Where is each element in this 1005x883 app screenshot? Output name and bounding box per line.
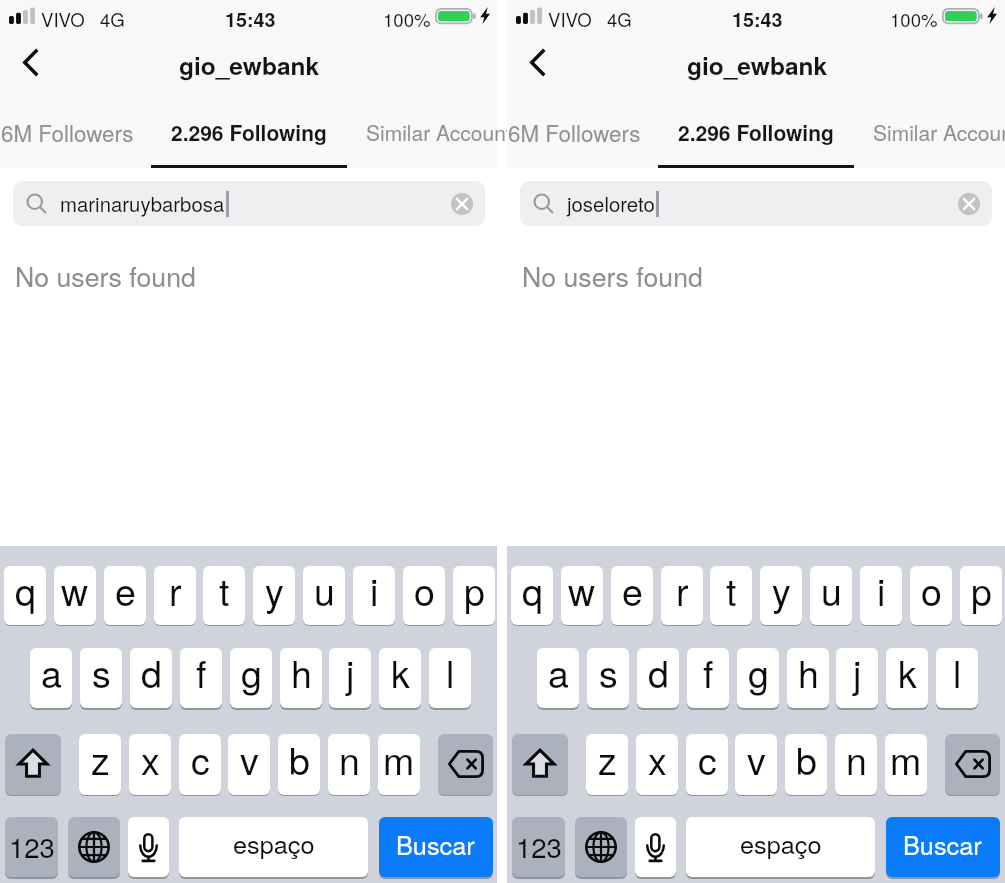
button[interactable]: 123: [512, 817, 565, 877]
staticText: z: [91, 734, 110, 786]
button[interactable]: i: [860, 566, 902, 625]
button[interactable]: Similar Accounts: [873, 116, 1005, 148]
button[interactable]: s: [80, 648, 122, 708]
staticText: joseloreto: [567, 189, 655, 218]
button[interactable]: n: [835, 734, 877, 795]
button[interactable]: z: [79, 734, 121, 795]
button[interactable]: z: [586, 734, 628, 795]
staticText: k: [898, 648, 917, 699]
staticText: v: [240, 734, 259, 786]
staticText: VIVO: [41, 6, 85, 33]
button[interactable]: j: [836, 648, 878, 708]
button[interactable]: m: [378, 734, 420, 795]
button[interactable]: a: [537, 648, 579, 708]
button[interactable]: b: [278, 734, 320, 795]
button[interactable]: t: [203, 566, 245, 625]
button[interactable]: f: [180, 648, 222, 708]
button[interactable]: o: [403, 566, 445, 625]
button[interactable]: joseloreto: [520, 181, 992, 226]
staticText: v: [747, 734, 766, 786]
button[interactable]: Dictate: [635, 817, 676, 877]
button[interactable]: 6M Followers: [508, 116, 641, 148]
button[interactable]: m: [885, 734, 927, 795]
button[interactable]: p: [453, 566, 495, 625]
button[interactable]: Backspace: [438, 734, 493, 795]
button[interactable]: c: [179, 734, 221, 795]
button[interactable]: c: [686, 734, 728, 795]
button[interactable]: l: [936, 648, 978, 708]
staticText: 4G: [607, 6, 632, 33]
button[interactable]: r: [661, 566, 703, 625]
button[interactable]: Similar Accounts: [366, 116, 523, 148]
button[interactable]: x: [129, 734, 171, 795]
button[interactable]: f: [687, 648, 729, 708]
button[interactable]: 123: [5, 817, 58, 877]
button[interactable]: Backspace: [945, 734, 1000, 795]
button[interactable]: k: [379, 648, 421, 708]
button[interactable]: j: [329, 648, 371, 708]
staticText: Buscar: [396, 826, 475, 862]
staticText: i: [370, 566, 379, 617]
button[interactable]: Buscar: [379, 817, 493, 877]
button[interactable]: y: [253, 566, 295, 625]
button[interactable]: y: [760, 566, 802, 625]
button[interactable]: 2.296 Following: [171, 116, 327, 148]
button[interactable]: Buscar: [886, 817, 1000, 877]
button[interactable]: h: [280, 648, 322, 708]
button[interactable]: espaço: [179, 817, 368, 877]
button[interactable]: u: [303, 566, 345, 625]
button[interactable]: s: [587, 648, 629, 708]
staticText: y: [265, 566, 284, 617]
button[interactable]: g: [230, 648, 272, 708]
button[interactable]: espaço: [686, 817, 875, 877]
button[interactable]: k: [886, 648, 928, 708]
button[interactable]: d: [130, 648, 172, 708]
button[interactable]: e: [611, 566, 653, 625]
button[interactable]: e: [104, 566, 146, 625]
button[interactable]: n: [328, 734, 370, 795]
button[interactable]: q: [4, 566, 46, 625]
button[interactable]: b: [785, 734, 827, 795]
staticText: c: [191, 734, 210, 786]
button[interactable]: o: [910, 566, 952, 625]
button[interactable]: Clear text: [950, 185, 988, 223]
staticText: n: [339, 734, 360, 786]
button[interactable]: Shift: [5, 734, 61, 795]
button[interactable]: 6M Followers: [1, 116, 134, 148]
button[interactable]: l: [429, 648, 471, 708]
button[interactable]: p: [960, 566, 1002, 625]
staticText: d: [648, 648, 669, 699]
button[interactable]: u: [810, 566, 852, 625]
button[interactable]: Change keyboard: [68, 817, 120, 877]
button[interactable]: t: [710, 566, 752, 625]
button[interactable]: Shift: [512, 734, 568, 795]
button[interactable]: marinaruybarbosa: [13, 181, 485, 226]
button[interactable]: q: [511, 566, 553, 625]
staticText: f: [703, 648, 714, 699]
button[interactable]: i: [353, 566, 395, 625]
staticText: No users found: [522, 256, 703, 294]
button[interactable]: v: [735, 734, 777, 795]
button[interactable]: Clear text: [443, 185, 481, 223]
button[interactable]: d: [637, 648, 679, 708]
button[interactable]: Back: [8, 39, 54, 85]
button[interactable]: g: [737, 648, 779, 708]
button[interactable]: 2.296 Following: [678, 116, 834, 148]
button[interactable]: Back: [515, 39, 561, 85]
staticText: a: [41, 648, 62, 699]
staticText: e: [622, 566, 643, 617]
staticText: t: [219, 566, 230, 617]
staticText: Buscar: [903, 826, 982, 862]
button[interactable]: w: [54, 566, 96, 625]
staticText: m: [383, 734, 415, 786]
button[interactable]: Change keyboard: [575, 817, 627, 877]
button[interactable]: Dictate: [128, 817, 169, 877]
button[interactable]: w: [561, 566, 603, 625]
button[interactable]: x: [636, 734, 678, 795]
button[interactable]: a: [30, 648, 72, 708]
staticText: 2.296 Following: [171, 117, 327, 147]
staticText: 123: [9, 826, 55, 865]
button[interactable]: v: [228, 734, 270, 795]
button[interactable]: h: [787, 648, 829, 708]
button[interactable]: r: [154, 566, 196, 625]
